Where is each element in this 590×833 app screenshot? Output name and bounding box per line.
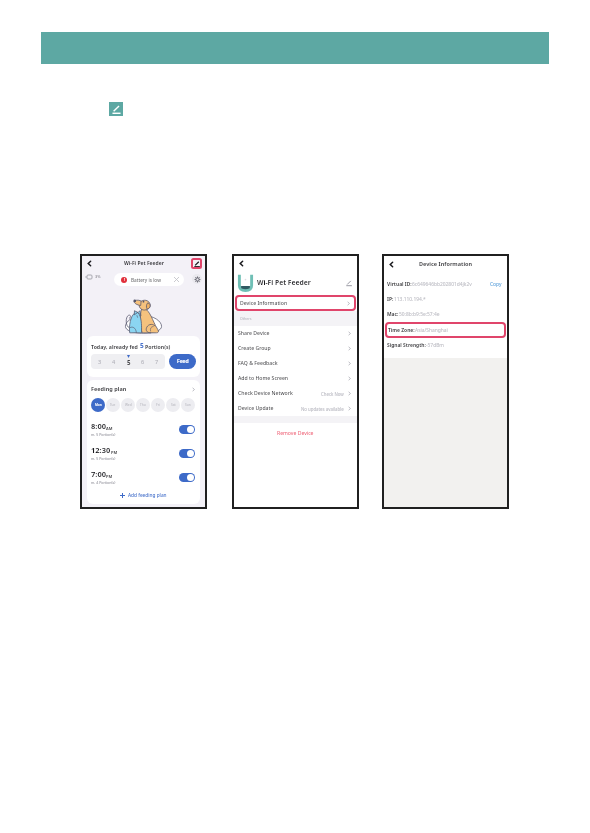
button[interactable]: Thu xyxy=(136,398,150,412)
staticText: No updates available xyxy=(301,406,344,412)
staticText: 4 xyxy=(112,358,116,366)
staticText: 3% xyxy=(95,274,101,279)
staticText: 6 xyxy=(141,358,145,366)
button[interactable]: Device Information xyxy=(235,295,356,311)
staticText: Mac: xyxy=(387,311,399,318)
staticText: Device Information xyxy=(419,260,473,268)
button[interactable]: 4 xyxy=(107,354,120,369)
button[interactable]: Copy xyxy=(490,281,502,288)
button[interactable]: Tue xyxy=(106,398,120,412)
staticText: Device Information xyxy=(240,300,288,307)
button[interactable]: 7 xyxy=(150,354,163,369)
button[interactable]: Edit device xyxy=(191,258,202,269)
staticText: IP: xyxy=(387,296,394,303)
staticText: Thu xyxy=(140,403,146,407)
staticText: Remove Device xyxy=(277,430,314,437)
staticText: Virtual ID: xyxy=(387,281,412,288)
button[interactable]: Create Group xyxy=(238,341,352,356)
staticText: 7:00 xyxy=(91,469,106,479)
other: Edit name xyxy=(346,280,352,286)
staticText: PM xyxy=(106,474,113,479)
staticText: 12:30 xyxy=(91,445,111,455)
button[interactable]: FAQ & Feedback xyxy=(238,356,352,371)
staticText: Sat xyxy=(171,403,176,407)
button[interactable]: 3 xyxy=(93,354,106,369)
staticText: 5 xyxy=(140,341,144,350)
button[interactable]: 7:00 xyxy=(91,465,196,489)
button[interactable]: Fri xyxy=(151,398,165,412)
staticText: 113.110.194.* xyxy=(394,296,426,303)
staticText: Tue xyxy=(110,403,116,407)
button[interactable]: 12:30 xyxy=(91,441,196,465)
staticText: 3 xyxy=(98,358,102,366)
staticText: 6c649646bb202801d4jk2v xyxy=(412,281,472,288)
button[interactable]: Settings xyxy=(192,274,202,284)
staticText: Sun xyxy=(185,403,191,407)
staticText: Mon xyxy=(95,403,102,407)
staticText: 5 xyxy=(127,358,131,366)
button[interactable]: Back xyxy=(237,259,246,268)
staticText: 8:00 xyxy=(91,421,106,431)
staticText: Wed xyxy=(125,403,132,407)
button[interactable]: Feed xyxy=(169,354,196,369)
button[interactable]: Feeding plan xyxy=(91,385,196,393)
staticText: Portion(s) xyxy=(145,343,171,350)
staticText: PM xyxy=(111,450,118,455)
staticText: Others xyxy=(240,316,252,321)
staticText: Signal Strength: xyxy=(387,342,426,349)
staticText: Feed xyxy=(177,358,189,365)
button[interactable]: Add to Home Screen xyxy=(238,371,352,386)
button[interactable]: Sun xyxy=(181,398,195,412)
staticText: Wi-Fi Pet Feeder xyxy=(257,278,311,287)
staticText: m. 4 Portion(s) xyxy=(91,480,116,485)
button[interactable]: Sat xyxy=(166,398,180,412)
staticText: Today, already fed xyxy=(91,343,138,350)
staticText: AM xyxy=(106,426,113,431)
button[interactable]: ! xyxy=(114,273,184,286)
button[interactable]: Edit xyxy=(109,102,123,116)
staticText: 7 xyxy=(155,358,159,366)
button[interactable]: Add feeding plan xyxy=(91,492,196,498)
staticText: Time Zone: xyxy=(388,327,415,334)
button[interactable]: 5 xyxy=(122,354,135,369)
staticText: Fri xyxy=(156,403,160,407)
button[interactable]: Check Device Network xyxy=(238,386,352,401)
staticText: 50:8b:b9:5e:57:4e xyxy=(399,311,440,318)
staticText: m. 5 Portion(s) xyxy=(91,432,116,437)
button[interactable]: Mon xyxy=(91,398,105,412)
staticText: Create Group xyxy=(238,345,271,352)
button[interactable] xyxy=(179,449,195,458)
button[interactable]: Wed xyxy=(121,398,135,412)
staticText: Add feeding plan xyxy=(128,492,167,498)
button[interactable] xyxy=(179,473,195,482)
staticText: Asia/Shanghai xyxy=(415,327,448,334)
button[interactable]: 6 xyxy=(136,354,149,369)
staticText: m. 5 Portion(s) xyxy=(91,456,116,461)
staticText: Feeding plan xyxy=(91,385,127,393)
button[interactable] xyxy=(179,425,195,434)
button[interactable]: Device Update xyxy=(238,401,352,416)
button[interactable]: Share Device xyxy=(238,326,352,341)
staticText: Share Device xyxy=(238,330,270,337)
staticText: Check Device Network xyxy=(238,390,293,397)
staticText: FAQ & Feedback xyxy=(238,360,278,367)
button[interactable]: 8:00 xyxy=(91,417,196,441)
button[interactable]: Wi-Fi Pet Feeder xyxy=(237,270,352,295)
button[interactable]: Back xyxy=(85,259,94,268)
staticText: Wi-Fi Pet Feeder xyxy=(124,260,164,267)
staticText: -57dBm xyxy=(426,342,444,349)
staticText: Battery is low xyxy=(131,277,161,283)
button[interactable]: Remove Device xyxy=(234,423,357,444)
other: Back xyxy=(388,261,395,268)
other: Back xyxy=(86,260,93,267)
staticText: Device Update xyxy=(238,405,274,412)
staticText: Add to Home Screen xyxy=(238,375,289,382)
button[interactable]: Back xyxy=(387,260,396,269)
staticText: ! xyxy=(124,278,125,282)
other: Back xyxy=(238,260,245,267)
staticText: Check Now xyxy=(321,391,344,397)
